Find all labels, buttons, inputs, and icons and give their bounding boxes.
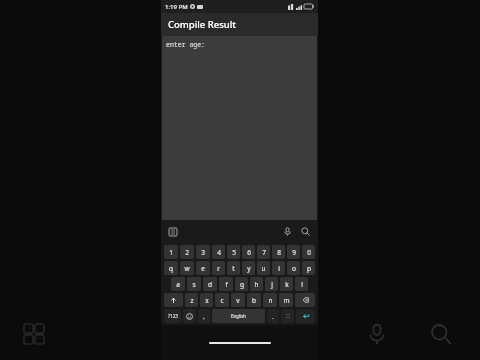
button[interactable]: d	[203, 277, 217, 291]
button[interactable]: n	[263, 293, 277, 307]
staticText: n	[268, 296, 273, 305]
staticText: 4	[217, 248, 221, 257]
button[interactable]: g	[235, 277, 248, 291]
staticText: 1:19 PM	[165, 3, 188, 11]
staticText: 2	[185, 248, 189, 257]
staticText: e	[201, 264, 205, 273]
staticText: q	[169, 264, 173, 273]
button[interactable]: j	[265, 277, 278, 291]
staticText: Compile Result	[168, 18, 237, 31]
button[interactable]: 5	[227, 245, 240, 259]
button[interactable]: Backspace	[295, 293, 315, 307]
button[interactable]: ,	[198, 309, 210, 323]
staticText: ,	[203, 313, 205, 320]
button[interactable]: 0	[302, 245, 315, 259]
staticText: i	[278, 264, 280, 273]
staticText: g	[240, 280, 244, 289]
button[interactable]: u	[257, 261, 270, 275]
staticText: o	[292, 264, 296, 273]
button[interactable]: Enter	[296, 309, 315, 323]
staticText: enter age:	[166, 40, 206, 49]
staticText: f	[225, 280, 228, 289]
staticText: r	[217, 264, 220, 273]
button[interactable]: 4	[212, 245, 225, 259]
button[interactable]: l	[295, 277, 308, 291]
button[interactable]: c	[215, 293, 229, 307]
button[interactable]: 6	[242, 245, 255, 259]
staticText: m	[283, 296, 290, 305]
button[interactable]: 3	[196, 245, 210, 259]
staticText: 3	[201, 248, 205, 257]
staticText: h	[254, 280, 259, 289]
button[interactable]: e	[196, 261, 210, 275]
button[interactable]: ?123	[164, 309, 181, 323]
button[interactable]: 2	[180, 245, 194, 259]
button[interactable]: z	[185, 293, 198, 307]
staticText: t	[232, 264, 235, 273]
button[interactable]: 7	[257, 245, 270, 259]
staticText: d	[208, 280, 212, 289]
staticText: u	[261, 264, 266, 273]
button[interactable]: Voice input	[280, 224, 295, 239]
button[interactable]: Settings	[281, 309, 294, 323]
button[interactable]: b	[247, 293, 261, 307]
button[interactable]: Voice search	[360, 317, 394, 351]
button[interactable]: p	[302, 261, 315, 275]
button[interactable]: w	[180, 261, 194, 275]
button[interactable]: x	[200, 293, 213, 307]
button[interactable]: i	[272, 261, 285, 275]
staticText: ?123	[168, 313, 178, 319]
button[interactable]: m	[279, 293, 293, 307]
staticText: 0	[307, 248, 311, 257]
button[interactable]: f	[219, 277, 233, 291]
button[interactable]: q	[164, 261, 178, 275]
button[interactable]: r	[212, 261, 225, 275]
staticText: k	[285, 280, 289, 289]
button[interactable]: a	[171, 277, 185, 291]
staticText: j	[271, 280, 273, 289]
staticText: 7	[262, 248, 266, 257]
button[interactable]: k	[280, 277, 293, 291]
staticText: l	[301, 280, 303, 289]
button[interactable]: o	[287, 261, 300, 275]
button[interactable]: English	[212, 309, 265, 323]
staticText: English	[231, 313, 246, 319]
button[interactable]: h	[250, 277, 263, 291]
staticText: 9	[292, 248, 296, 257]
staticText: x	[205, 296, 209, 305]
staticText: p	[307, 264, 311, 273]
staticText: s	[192, 280, 196, 289]
staticText: 6	[247, 248, 251, 257]
button[interactable]: 9	[287, 245, 300, 259]
button[interactable]: s	[187, 277, 201, 291]
button[interactable]: v	[231, 293, 245, 307]
button[interactable]: Search	[298, 224, 313, 239]
button[interactable]: 8	[272, 245, 285, 259]
staticText: z	[190, 296, 194, 305]
staticText: 1	[169, 248, 173, 257]
staticText: v	[236, 296, 240, 305]
staticText: b	[252, 296, 256, 305]
button[interactable]: .	[267, 309, 279, 323]
staticText: 5	[232, 248, 236, 257]
button[interactable]: t	[227, 261, 240, 275]
staticText: a	[176, 280, 180, 289]
staticText: y	[247, 264, 251, 273]
staticText: 8	[277, 248, 281, 257]
staticText: c	[220, 296, 224, 305]
button[interactable]: 1	[164, 245, 178, 259]
button[interactable]: y	[242, 261, 255, 275]
staticText: w	[184, 264, 190, 273]
button[interactable]: Emoji	[183, 309, 196, 323]
button[interactable]: Shift	[164, 293, 183, 307]
button[interactable]: Search	[424, 317, 458, 351]
button[interactable]: All apps	[21, 321, 47, 347]
staticText: .	[272, 313, 274, 320]
button[interactable]: Clipboard	[166, 225, 179, 238]
